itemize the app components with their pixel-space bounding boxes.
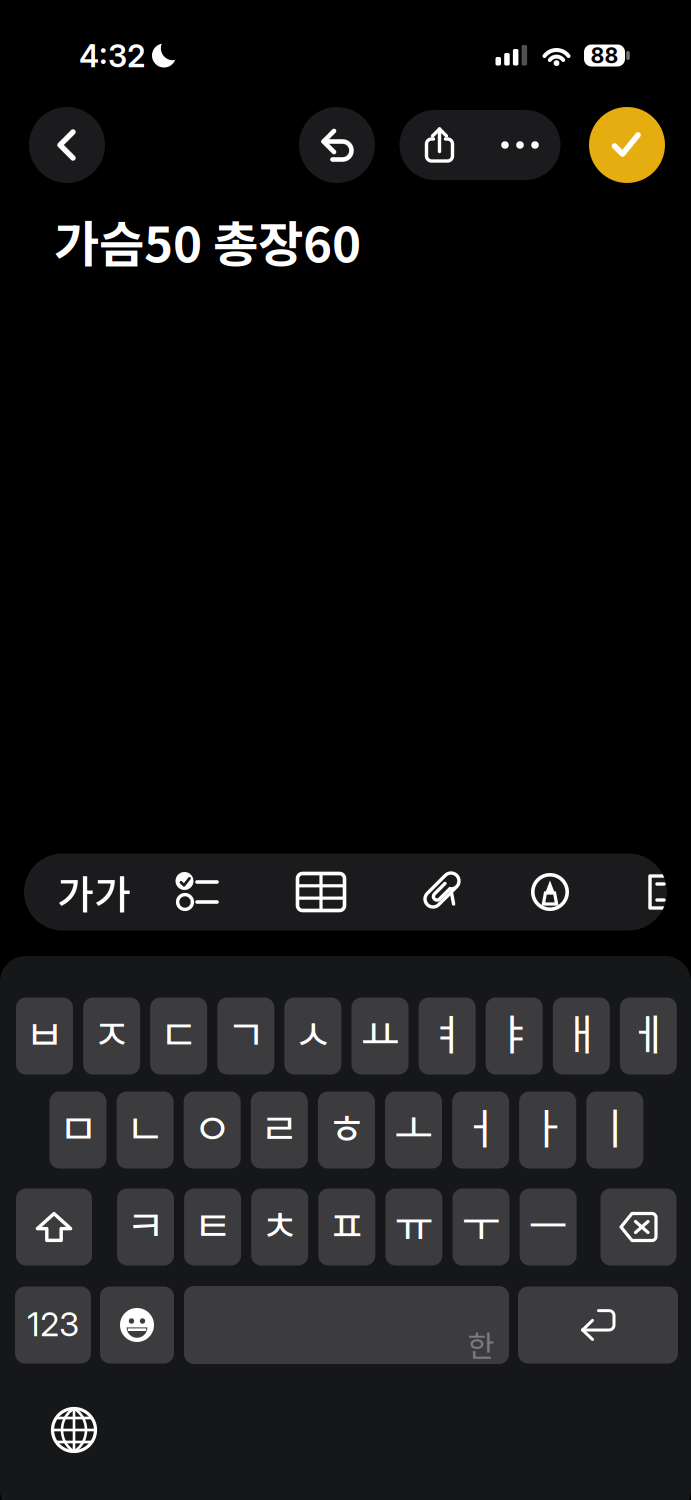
button[interactable]: ㅊ — [251, 1188, 308, 1265]
staticText: ㅑ — [495, 1001, 534, 1063]
button[interactable]: ㅡ — [520, 1188, 577, 1265]
staticText: ㄴ — [126, 1095, 165, 1157]
button[interactable]: ㄴ — [117, 1091, 174, 1168]
button[interactable]: Space — [184, 1286, 509, 1364]
staticText: ㅊ — [260, 1192, 299, 1254]
staticText: ㄱ — [226, 1001, 265, 1063]
staticText: ㅛ — [360, 1001, 399, 1063]
staticText: 가가 — [57, 863, 131, 921]
staticText: ㅍ — [327, 1192, 366, 1254]
button[interactable]: ㅓ — [452, 1091, 509, 1168]
button[interactable]: Return — [518, 1286, 678, 1363]
button[interactable]: ㅁ — [49, 1091, 106, 1168]
button[interactable]: ㄱ — [217, 997, 274, 1074]
staticText: 4:32 — [79, 37, 146, 74]
staticText: ㅐ — [562, 1001, 601, 1063]
staticText: 123 — [27, 1304, 79, 1344]
button[interactable]: ㅔ — [620, 997, 677, 1074]
staticText: ㅡ — [529, 1192, 568, 1254]
button[interactable]: Shift — [16, 1188, 92, 1265]
button[interactable]: Undo — [299, 107, 375, 183]
button[interactable]: ㄷ — [150, 997, 207, 1074]
button[interactable]: Table — [273, 853, 369, 930]
button[interactable]: ㅈ — [83, 997, 140, 1074]
button[interactable]: ㅇ — [184, 1091, 241, 1168]
button[interactable]: ㅕ — [419, 997, 476, 1074]
button[interactable]: Switch keyboard — [50, 1406, 98, 1454]
button[interactable]: 123 — [15, 1286, 91, 1363]
staticText: 88 — [590, 43, 618, 68]
button[interactable]: More — [479, 110, 560, 180]
staticText: ㅣ — [595, 1095, 634, 1157]
staticText: ㅅ — [293, 1001, 332, 1063]
button[interactable]: Checklist — [148, 853, 244, 930]
button[interactable]: ㅜ — [452, 1188, 509, 1265]
button[interactable]: ㅍ — [318, 1188, 375, 1265]
staticText: ㅠ — [394, 1192, 433, 1254]
staticText: ㅌ — [193, 1192, 232, 1254]
staticText: ㅕ — [428, 1001, 467, 1063]
button[interactable]: Done — [589, 107, 665, 183]
staticText: ㅂ — [25, 1001, 64, 1063]
staticText: ㅔ — [629, 1001, 668, 1063]
staticText: ㅇ — [193, 1095, 232, 1157]
button[interactable]: Text format — [46, 853, 142, 930]
button[interactable]: ㅋ — [117, 1188, 174, 1265]
staticText: ㅜ — [461, 1192, 500, 1254]
staticText: 한 — [467, 1323, 494, 1365]
button[interactable]: ㅑ — [486, 997, 543, 1074]
button[interactable]: ㅏ — [519, 1091, 576, 1168]
button[interactable]: Attach — [393, 853, 489, 930]
button[interactable]: ㅂ — [16, 997, 73, 1074]
button[interactable]: Share — [399, 110, 479, 180]
staticText: ㅗ — [394, 1095, 433, 1157]
staticText: ㅏ — [528, 1095, 567, 1157]
button[interactable]: Scan — [636, 853, 676, 930]
button[interactable]: ㅅ — [284, 997, 341, 1074]
button[interactable]: ㄹ — [251, 1091, 308, 1168]
button[interactable]: Emoji — [100, 1286, 174, 1363]
button[interactable]: ㅌ — [184, 1188, 241, 1265]
button[interactable]: Delete — [600, 1188, 676, 1265]
staticText: ㅎ — [327, 1095, 366, 1157]
button[interactable]: Markup — [502, 853, 598, 930]
button[interactable]: ㅎ — [318, 1091, 375, 1168]
staticText: ㄹ — [260, 1095, 299, 1157]
button[interactable]: ㅗ — [385, 1091, 442, 1168]
button[interactable]: ㅣ — [586, 1091, 643, 1168]
staticText: 가슴50 총장60 — [54, 205, 361, 277]
staticText: ㅁ — [58, 1095, 97, 1157]
button[interactable]: ㅛ — [351, 997, 408, 1074]
button[interactable]: ㅠ — [385, 1188, 442, 1265]
staticText: ㅋ — [126, 1192, 165, 1254]
staticText: ㅈ — [92, 1001, 131, 1063]
button[interactable]: ㅐ — [553, 997, 610, 1074]
staticText: ㅓ — [461, 1095, 500, 1157]
staticText: ㄷ — [159, 1001, 198, 1063]
button[interactable]: Back — [29, 107, 105, 183]
